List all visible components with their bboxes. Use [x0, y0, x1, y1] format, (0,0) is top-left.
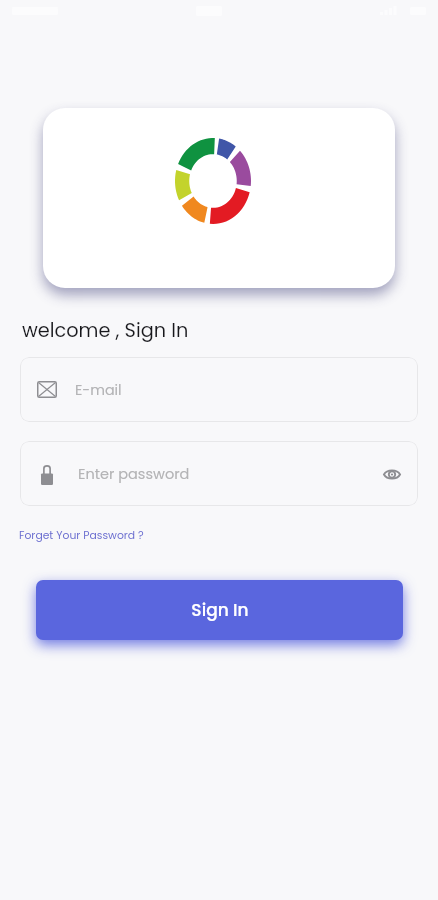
button[interactable]: Sign In [36, 580, 403, 640]
staticText: E-mail [75, 380, 122, 400]
button[interactable]: Enter password [20, 441, 418, 506]
button[interactable]: E-mail [20, 357, 418, 422]
staticText: Sign In [191, 598, 249, 622]
staticText: welcome , Sign In [22, 317, 189, 344]
button[interactable]: Forget Your Password ? [19, 528, 144, 543]
staticText: Enter password [78, 464, 190, 484]
button[interactable]: Show password [375, 457, 409, 491]
